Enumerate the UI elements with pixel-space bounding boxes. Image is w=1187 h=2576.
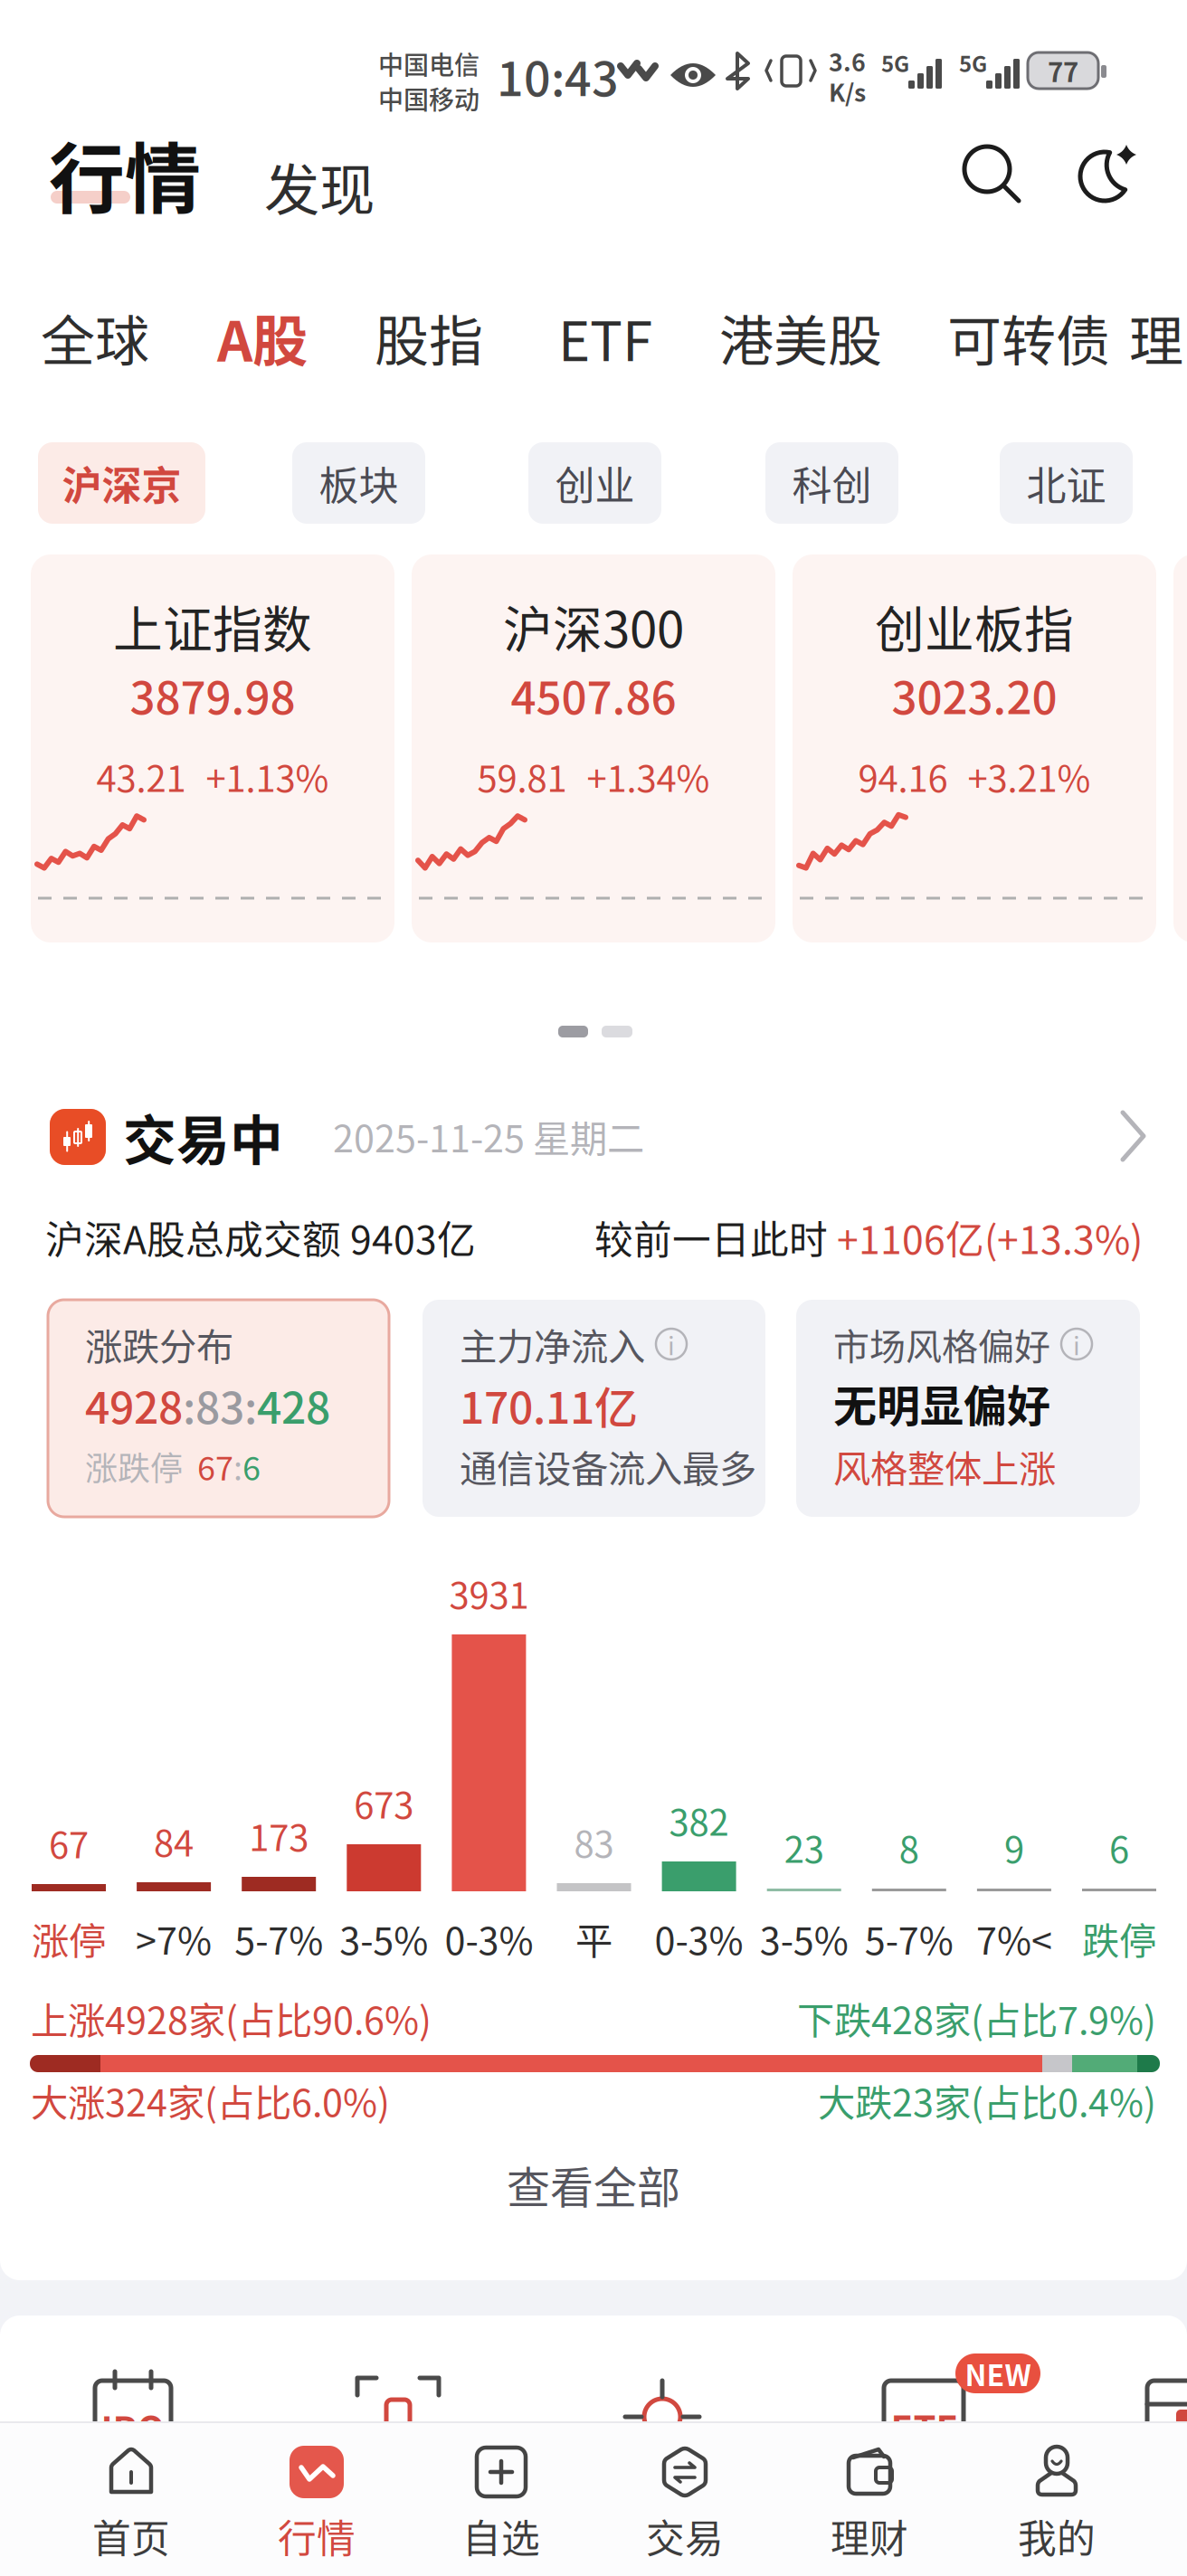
button[interactable]: 主力净流入 bbox=[423, 1300, 765, 1517]
button[interactable]: 发现 bbox=[264, 152, 391, 221]
staticText: 3.6 bbox=[829, 43, 866, 78]
button[interactable]: 查看全部 bbox=[0, 2151, 1187, 2218]
button[interactable]: 涨跌分布 bbox=[48, 1300, 389, 1517]
staticText: 涨跌停 bbox=[85, 1443, 183, 1490]
staticText: 沪深300 bbox=[503, 590, 684, 662]
staticText: 173 bbox=[249, 1809, 309, 1861]
button[interactable]: 自选 bbox=[411, 2421, 592, 2576]
staticText: 我的 bbox=[1018, 2508, 1096, 2564]
staticText: K/s bbox=[829, 74, 866, 109]
staticText: 大跌23家(占比0.4%) bbox=[818, 2073, 1156, 2127]
staticText: 382 bbox=[669, 1794, 729, 1846]
staticText: 2025-11-25 星期二 bbox=[333, 1109, 644, 1163]
staticText: 创业 bbox=[555, 454, 635, 512]
staticText: 科创 bbox=[792, 454, 872, 512]
staticText: 6 bbox=[1109, 1821, 1129, 1873]
staticText: 3023.20 bbox=[892, 662, 1057, 727]
staticText: 8 bbox=[899, 1821, 919, 1873]
staticText: 行情 bbox=[278, 2508, 356, 2564]
staticText: : bbox=[244, 1373, 257, 1436]
staticText: i bbox=[668, 1326, 675, 1362]
staticText: 4928 bbox=[85, 1373, 183, 1436]
staticText: 中国移动 bbox=[378, 80, 480, 117]
staticText: 83 bbox=[195, 1373, 244, 1436]
staticText: 上证指数 bbox=[113, 590, 312, 662]
button[interactable]: 市场风格偏好 bbox=[796, 1300, 1140, 1517]
button[interactable]: 科创 bbox=[765, 442, 898, 524]
staticText: A股 bbox=[217, 297, 308, 378]
staticText: 84 bbox=[154, 1814, 194, 1867]
staticText: 较前一日此时 bbox=[594, 1209, 837, 1265]
staticText: 59.81 bbox=[477, 750, 567, 802]
button[interactable]: 港美股 bbox=[711, 302, 890, 373]
staticText: 行情 bbox=[49, 118, 201, 228]
button[interactable]: 夜间模式 bbox=[1078, 145, 1140, 206]
staticText: : bbox=[233, 1443, 242, 1490]
staticText: 首页 bbox=[92, 2508, 170, 2564]
staticText: 3931 bbox=[449, 1567, 529, 1619]
staticText: : bbox=[183, 1373, 195, 1436]
staticText: ETF bbox=[558, 298, 652, 377]
button[interactable]: A股 bbox=[199, 302, 326, 373]
staticText: 9 bbox=[1004, 1821, 1024, 1873]
staticText: 沪深A股总成交额 9403亿 bbox=[45, 1209, 476, 1265]
button[interactable]: ETF bbox=[541, 302, 669, 373]
staticText: 77 bbox=[1048, 51, 1078, 90]
staticText: 创业板指 bbox=[875, 590, 1074, 662]
staticText: 94.16 bbox=[858, 750, 948, 802]
staticText: 83 bbox=[574, 1815, 614, 1868]
button[interactable]: 沪深300 bbox=[412, 554, 775, 942]
button[interactable]: 行情 bbox=[49, 118, 208, 216]
staticText: 中国电信 bbox=[378, 45, 480, 82]
button[interactable]: 交易中 bbox=[0, 1093, 1187, 1183]
staticText: 通信设备流入最多 bbox=[460, 1439, 756, 1493]
button[interactable]: 行情 bbox=[226, 2421, 407, 2576]
button[interactable]: 全球 bbox=[25, 302, 165, 373]
button[interactable]: 沪深京 bbox=[38, 442, 205, 524]
staticText: 全球 bbox=[41, 298, 149, 377]
staticText: 下跌428家(占比7.9%) bbox=[797, 1991, 1156, 2045]
staticText: 5G bbox=[881, 47, 909, 79]
button[interactable]: 可转债 bbox=[939, 302, 1118, 373]
staticText: ETF bbox=[891, 2401, 957, 2453]
button[interactable]: 板块 bbox=[292, 442, 425, 524]
button[interactable]: 交易 bbox=[594, 2421, 775, 2576]
staticText: 风格整体上涨 bbox=[833, 1439, 1056, 1493]
button[interactable]: 创业板指 bbox=[793, 554, 1156, 942]
staticText: 北证 bbox=[1026, 454, 1106, 512]
button[interactable]: 创业 bbox=[528, 442, 661, 524]
staticText: 3-5% bbox=[760, 1911, 848, 1965]
button[interactable]: 搜索 bbox=[963, 145, 1024, 206]
button[interactable]: 上证指数 bbox=[31, 554, 394, 942]
staticText: 23 bbox=[784, 1821, 824, 1873]
button[interactable]: 北证 bbox=[1000, 442, 1133, 524]
staticText: i bbox=[1073, 1326, 1080, 1362]
staticText: 市场风格偏好 bbox=[833, 1318, 1050, 1370]
staticText: 4507.86 bbox=[511, 662, 676, 727]
staticText: 主力净流入 bbox=[460, 1317, 645, 1371]
staticText: 170.11亿 bbox=[460, 1373, 638, 1436]
staticText: 673 bbox=[354, 1776, 414, 1829]
staticText: 发现 bbox=[264, 146, 375, 226]
staticText: 5-7% bbox=[235, 1911, 323, 1965]
staticText: 43.21 bbox=[96, 750, 186, 802]
staticText: 股指 bbox=[375, 298, 483, 377]
staticText: 涨跌分布 bbox=[85, 1317, 233, 1371]
staticText: 10:43 bbox=[497, 42, 619, 110]
staticText: NEW bbox=[965, 2352, 1031, 2394]
staticText: +1.34% bbox=[587, 750, 710, 802]
staticText: IPO bbox=[101, 2401, 165, 2454]
staticText: +1106亿(+13.3%) bbox=[837, 1209, 1143, 1265]
staticText: 板块 bbox=[319, 454, 399, 512]
staticText: >7% bbox=[136, 1911, 212, 1965]
staticText: 大涨324家(占比6.0%) bbox=[31, 2073, 390, 2127]
staticText: 0-3% bbox=[445, 1911, 533, 1965]
button[interactable]: 我的 bbox=[966, 2421, 1147, 2576]
staticText: 3-5% bbox=[340, 1911, 428, 1965]
staticText: 理财 bbox=[831, 2508, 908, 2564]
button[interactable]: 首页 bbox=[41, 2421, 222, 2576]
button[interactable]: 股指 bbox=[366, 302, 492, 373]
button[interactable]: 理财 bbox=[779, 2421, 960, 2576]
staticText: 无明显偏好 bbox=[833, 1371, 1050, 1434]
staticText: 交易 bbox=[646, 2508, 724, 2564]
